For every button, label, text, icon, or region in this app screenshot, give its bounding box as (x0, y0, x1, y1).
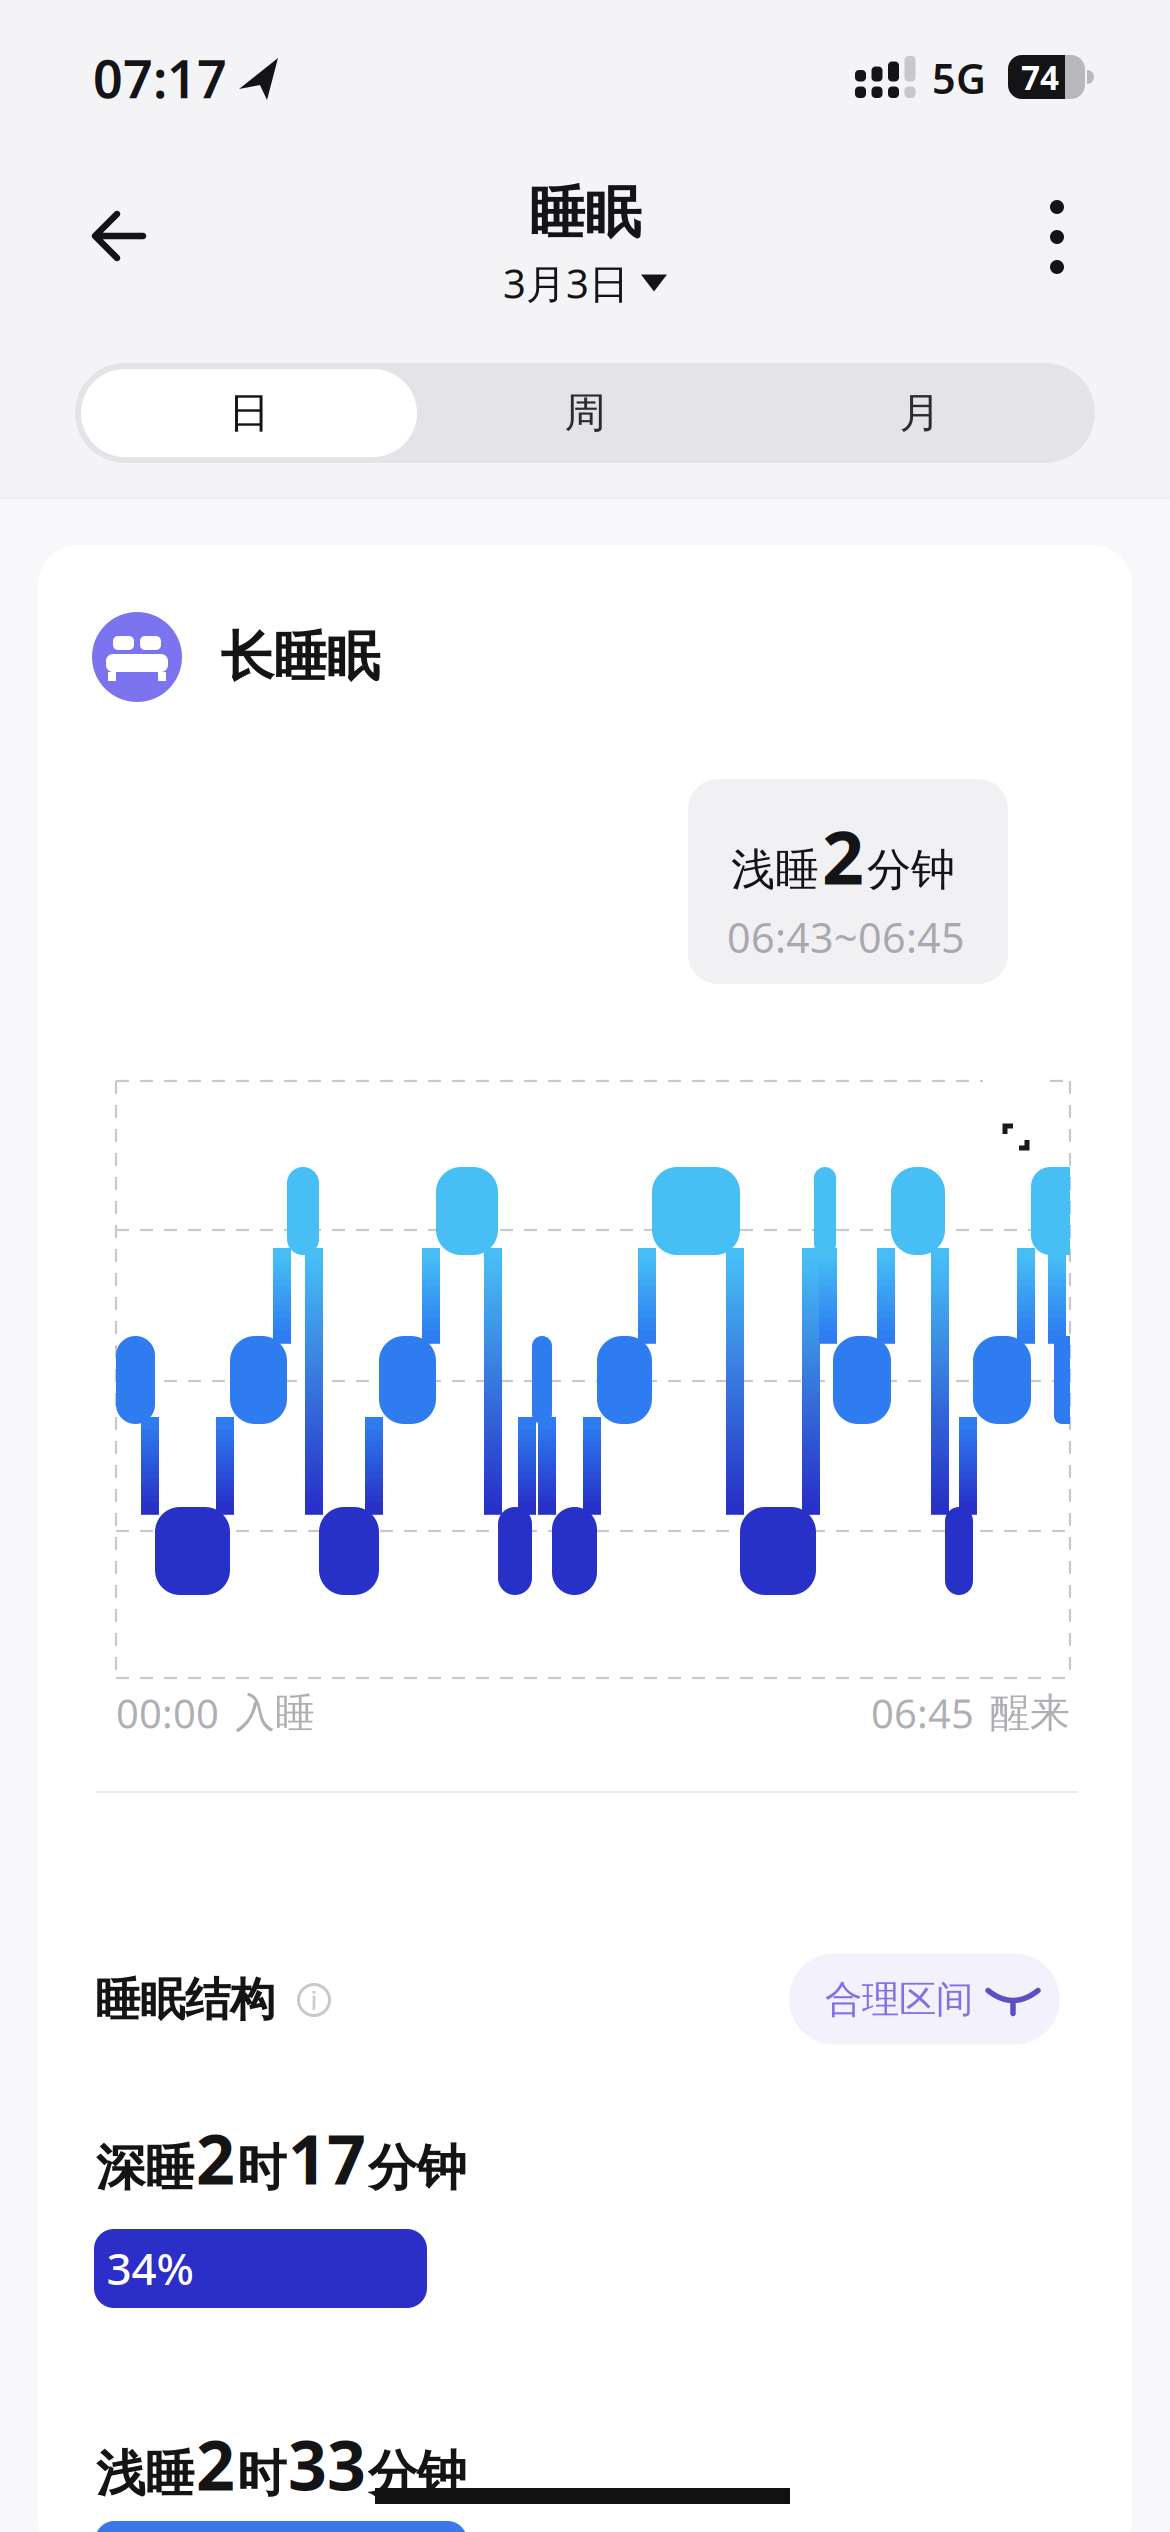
staticText: 00:00 (116, 1686, 219, 1739)
button[interactable]: 合理区间 (789, 1953, 1060, 2044)
button[interactable]: 周 (417, 369, 753, 457)
button[interactable]: More (1027, 177, 1087, 297)
staticText: 合理区间 (825, 1977, 973, 2022)
staticText: 醒来 (990, 1688, 1070, 1737)
staticText: 34% (106, 2239, 193, 2297)
staticText: 2 (196, 2419, 235, 2509)
staticText: 日 (228, 388, 269, 438)
staticText: 07:17 (93, 43, 227, 113)
staticText: 分钟 (368, 2444, 466, 2504)
staticText: 长睡眠 (220, 624, 379, 690)
button[interactable]: Fullscreen (981, 1102, 1051, 1172)
staticText: 时 (237, 2444, 286, 2504)
staticText: 17 (288, 2113, 366, 2203)
staticText: 5G (932, 51, 986, 105)
staticText: 浅睡 (731, 843, 819, 897)
staticText: 2 (822, 807, 864, 905)
staticText: 06:45 (871, 1686, 974, 1739)
staticText: 2 (196, 2113, 235, 2203)
button[interactable]: Back (67, 205, 171, 267)
button[interactable]: 日 (81, 369, 417, 457)
staticText: 33 (288, 2419, 366, 2509)
staticText: 浅睡 (96, 2444, 194, 2504)
staticText: 3月3日 (503, 256, 629, 309)
staticText: 睡眠 (529, 179, 641, 247)
staticText: 分钟 (368, 2138, 466, 2198)
staticText: 分钟 (867, 843, 955, 897)
staticText: 睡眠结构 (95, 1972, 275, 2028)
staticText: 时 (237, 2138, 286, 2198)
staticText: 入睡 (235, 1688, 315, 1737)
staticText: 月 (899, 388, 940, 438)
staticText: 74 (1021, 55, 1059, 99)
button[interactable]: 月 (752, 369, 1088, 457)
staticText: 周 (564, 388, 605, 438)
staticText: i (310, 1983, 317, 2017)
staticText: 06:43~06:45 (727, 910, 965, 964)
staticText: 深睡 (96, 2138, 194, 2198)
button[interactable]: Info (297, 1983, 331, 2017)
button[interactable]: 3月3日 (503, 256, 667, 309)
